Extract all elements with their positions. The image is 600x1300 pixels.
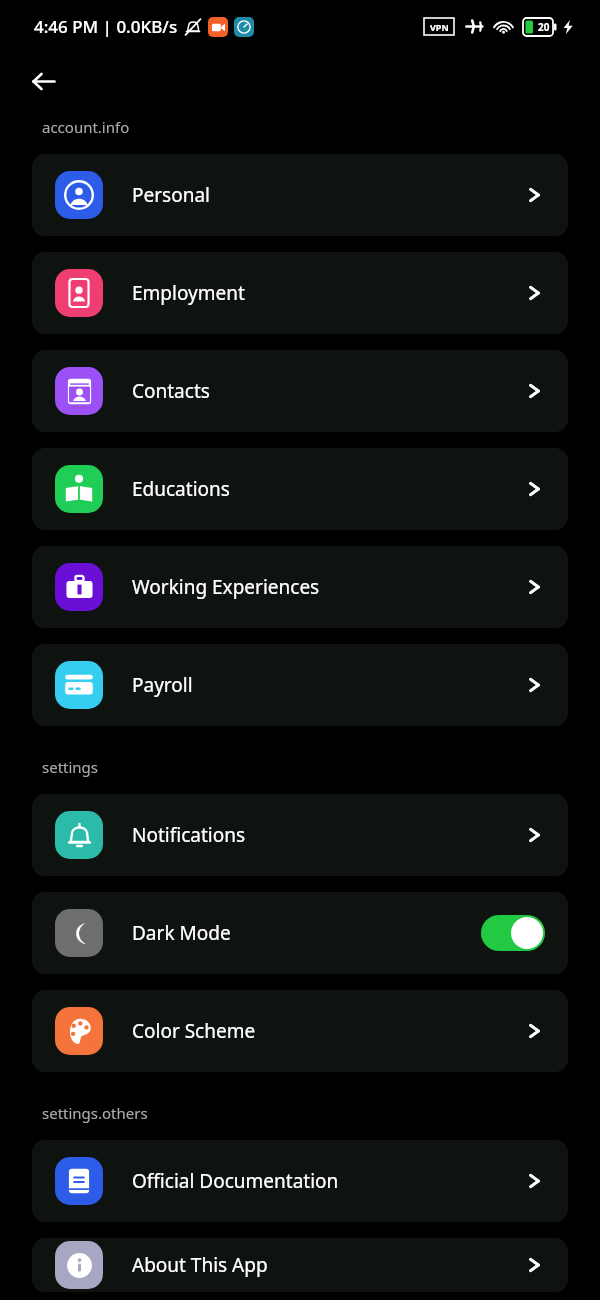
staticText: Payroll	[132, 672, 523, 698]
staticText: Employment	[132, 280, 523, 306]
staticText: About This App	[132, 1252, 523, 1278]
button[interactable]: About This App	[32, 1238, 568, 1292]
staticText: VPN	[430, 21, 449, 33]
button[interactable]: Notifications	[32, 794, 568, 876]
button[interactable]: Payroll	[32, 644, 568, 726]
button[interactable]: Employment	[32, 252, 568, 334]
button[interactable]: Personal	[32, 154, 568, 236]
staticText: Official Documentation	[132, 1168, 523, 1194]
button[interactable]: Dark Mode toggle	[481, 915, 545, 951]
staticText: Working Experiences	[132, 574, 523, 600]
button[interactable]: Color Scheme	[32, 990, 568, 1072]
staticText: Contacts	[132, 378, 523, 404]
button[interactable]: Official Documentation	[32, 1140, 568, 1222]
staticText: 4:46 PM | 0.0KB/s	[34, 15, 178, 38]
staticText: settings	[42, 757, 99, 777]
staticText: Personal	[132, 182, 523, 208]
button[interactable]: Educations	[32, 448, 568, 530]
button[interactable]: Working Experiences	[32, 546, 568, 628]
button[interactable]: Dark Mode	[32, 892, 568, 974]
button[interactable]: Back	[22, 60, 64, 102]
staticText: settings.others	[42, 1103, 148, 1123]
staticText: Dark Mode	[132, 920, 481, 946]
staticText: Color Scheme	[132, 1018, 523, 1044]
staticText: Notifications	[132, 822, 523, 848]
button[interactable]: Contacts	[32, 350, 568, 432]
staticText: Educations	[132, 476, 523, 502]
staticText: 20	[538, 20, 550, 34]
staticText: account.info	[42, 117, 130, 137]
